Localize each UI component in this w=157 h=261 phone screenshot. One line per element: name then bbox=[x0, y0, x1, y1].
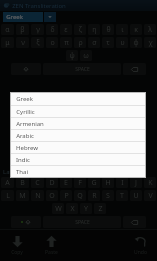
staticText: R bbox=[92, 191, 97, 201]
button[interactable]: ζ bbox=[74, 24, 86, 35]
button[interactable]: Q bbox=[74, 190, 86, 201]
button[interactable]: S bbox=[102, 190, 114, 201]
button[interactable]: K bbox=[144, 177, 156, 188]
button[interactable]: ω bbox=[80, 50, 92, 61]
button[interactable]: H bbox=[102, 177, 114, 188]
staticText: Armenian bbox=[16, 120, 44, 128]
staticText: D bbox=[49, 178, 55, 188]
button[interactable]: α bbox=[1, 24, 14, 35]
staticText: SPACE bbox=[75, 219, 90, 226]
staticText: Paste bbox=[45, 249, 58, 256]
button[interactable]: Hebrew bbox=[11, 142, 145, 153]
button[interactable]: θ bbox=[102, 24, 114, 35]
button[interactable]: W bbox=[52, 203, 64, 214]
staticText: T bbox=[120, 191, 124, 201]
button[interactable]: Y bbox=[80, 203, 92, 214]
staticText: SPACE bbox=[75, 66, 90, 73]
button[interactable]: Arabic bbox=[11, 130, 145, 141]
button[interactable]: Greek bbox=[11, 93, 145, 105]
button[interactable]: X bbox=[66, 203, 78, 214]
button[interactable]: R bbox=[88, 190, 100, 201]
staticText: W bbox=[55, 204, 62, 214]
button[interactable]: C bbox=[31, 177, 44, 188]
staticText: L bbox=[6, 191, 10, 201]
button[interactable]: Armenian bbox=[11, 118, 145, 129]
button[interactable]: μ bbox=[1, 37, 14, 48]
button[interactable]: M bbox=[16, 190, 29, 201]
button[interactable]: Undo bbox=[127, 235, 153, 256]
staticText: H bbox=[105, 178, 111, 188]
button[interactable]: V bbox=[144, 190, 156, 201]
button[interactable]: ο bbox=[46, 37, 58, 48]
staticText: ζ bbox=[78, 25, 82, 35]
staticText: Z bbox=[98, 204, 103, 214]
button[interactable]: T bbox=[116, 190, 128, 201]
staticText: ρ bbox=[78, 38, 83, 48]
button[interactable]: Z bbox=[94, 203, 106, 214]
button[interactable]: J bbox=[130, 177, 142, 188]
button[interactable]: β bbox=[16, 24, 29, 35]
button[interactable]: Backspace bbox=[123, 63, 146, 75]
staticText: α bbox=[5, 25, 10, 35]
button[interactable]: ψ bbox=[66, 50, 78, 61]
button[interactable]: Copy bbox=[4, 235, 30, 256]
staticText: ε bbox=[64, 25, 68, 35]
staticText: μ bbox=[5, 38, 10, 48]
button[interactable]: N bbox=[31, 190, 44, 201]
staticText: Greek bbox=[16, 95, 33, 103]
button[interactable]: Indic bbox=[11, 154, 145, 165]
staticText: Y bbox=[84, 204, 88, 214]
button[interactable]: L bbox=[1, 190, 14, 201]
button[interactable]: D bbox=[46, 177, 58, 188]
staticText: ψ bbox=[69, 51, 75, 61]
button[interactable]: E bbox=[60, 177, 72, 188]
staticText: Arabic bbox=[16, 132, 34, 140]
button[interactable]: τ bbox=[102, 37, 114, 48]
staticText: V bbox=[148, 191, 153, 201]
button[interactable]: I bbox=[116, 177, 128, 188]
staticText: π bbox=[64, 38, 69, 48]
button[interactable]: Backspace bbox=[123, 216, 146, 228]
button[interactable]: Paste bbox=[38, 235, 64, 256]
staticText: υ bbox=[120, 38, 125, 48]
button[interactable]: κ bbox=[130, 24, 142, 35]
button[interactable]: Thai bbox=[11, 166, 145, 177]
staticText: G bbox=[91, 178, 97, 188]
button[interactable]: ξ bbox=[31, 37, 44, 48]
button[interactable]: π bbox=[60, 37, 72, 48]
button[interactable]: O bbox=[46, 190, 58, 201]
button[interactable]: P bbox=[60, 190, 72, 201]
staticText: κ bbox=[134, 25, 138, 35]
button[interactable]: Cyrillic bbox=[11, 106, 145, 117]
button[interactable]: B bbox=[16, 177, 29, 188]
button[interactable]: Shift bbox=[11, 216, 41, 228]
button[interactable]: ι bbox=[116, 24, 128, 35]
staticText: E bbox=[64, 178, 68, 188]
staticText: β bbox=[20, 25, 25, 35]
button[interactable]: G bbox=[88, 177, 100, 188]
button[interactable]: Shift bbox=[11, 63, 41, 75]
button[interactable]: φ bbox=[130, 37, 142, 48]
button[interactable]: ρ bbox=[74, 37, 86, 48]
staticText: Cyrillic bbox=[16, 108, 35, 116]
button[interactable]: χ bbox=[144, 37, 156, 48]
button[interactable]: λ bbox=[144, 24, 156, 35]
staticText: K bbox=[148, 178, 153, 188]
button[interactable]: ε bbox=[60, 24, 72, 35]
button[interactable]: F bbox=[74, 177, 86, 188]
staticText: ι bbox=[121, 25, 124, 35]
button[interactable]: υ bbox=[116, 37, 128, 48]
button[interactable]: η bbox=[88, 24, 100, 35]
staticText: τ bbox=[106, 38, 110, 48]
button[interactable]: U bbox=[130, 190, 142, 201]
button[interactable]: γ bbox=[31, 24, 44, 35]
button[interactable]: δ bbox=[46, 24, 58, 35]
button[interactable]: Greek bbox=[3, 12, 56, 22]
staticText: Greek bbox=[6, 13, 23, 21]
staticText: C bbox=[35, 178, 40, 188]
button[interactable]: A bbox=[1, 177, 14, 188]
button[interactable]: ν bbox=[16, 37, 29, 48]
button[interactable]: σ bbox=[88, 37, 100, 48]
